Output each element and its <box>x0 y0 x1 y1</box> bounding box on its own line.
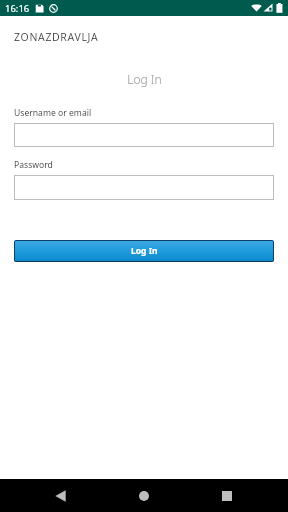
staticText: 16:16 <box>5 2 30 15</box>
button[interactable]: Home <box>124 479 164 512</box>
staticText: Password <box>14 159 53 171</box>
button[interactable] <box>14 175 274 200</box>
staticText: Log In <box>131 245 158 257</box>
button[interactable]: Back <box>40 479 80 512</box>
staticText: Log In <box>127 71 162 87</box>
button[interactable]: Recents <box>207 479 247 512</box>
staticText: Username or email <box>14 107 92 119</box>
button[interactable] <box>14 123 274 147</box>
staticText: ZONAZDRAVLJA <box>14 30 99 44</box>
button[interactable]: Log In <box>14 240 274 262</box>
